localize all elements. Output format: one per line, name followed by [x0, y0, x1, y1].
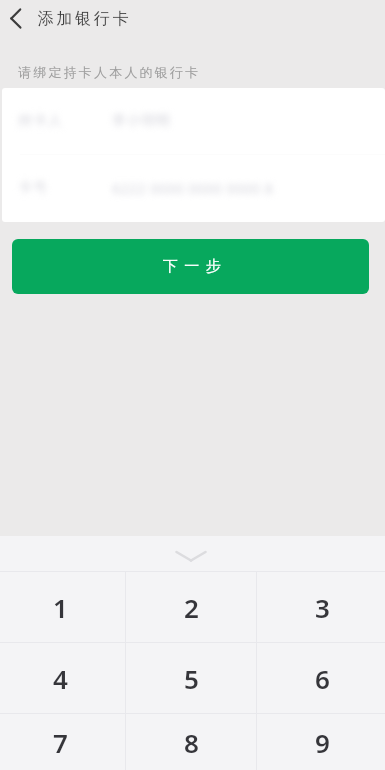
staticText: 8 [184, 725, 199, 760]
staticText: 添加银行卡 [36, 9, 130, 29]
button[interactable]: 5 [126, 643, 256, 713]
staticText: 6222 0000 0000 0000 8 [112, 179, 274, 198]
button[interactable]: Back [0, 1, 36, 37]
staticText: 3 [315, 590, 330, 625]
button[interactable]: 9 [257, 714, 385, 770]
staticText: 4 [53, 661, 68, 696]
button[interactable]: 1 [0, 572, 125, 642]
staticText: 持卡人 [18, 112, 112, 130]
button[interactable]: 7 [0, 714, 125, 770]
staticText: 下一步 [163, 257, 227, 276]
staticText: 请绑定持卡人本人的银行卡 [18, 64, 201, 80]
button[interactable]: 2 [126, 572, 256, 642]
staticText: 李小明明 [112, 112, 170, 130]
staticText: 6 [315, 661, 330, 696]
button[interactable]: 4 [0, 643, 125, 713]
button[interactable]: 8 [126, 714, 256, 770]
staticText: 卡号 [18, 179, 112, 197]
staticText: 5 [184, 661, 199, 696]
staticText: 9 [315, 725, 330, 760]
staticText: 2 [184, 590, 199, 625]
staticText: 1 [53, 590, 68, 625]
button[interactable]: 6 [257, 643, 385, 713]
button[interactable]: 3 [257, 572, 385, 642]
staticText: 7 [53, 725, 68, 760]
button[interactable]: 下一步 [12, 239, 369, 294]
